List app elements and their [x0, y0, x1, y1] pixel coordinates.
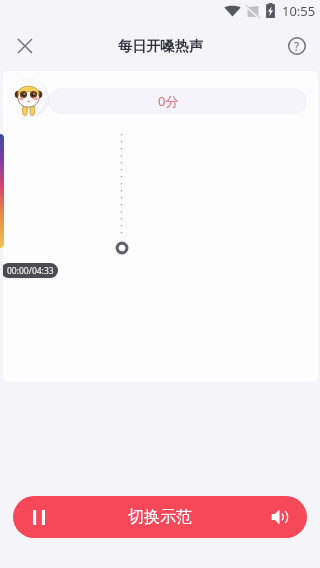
button[interactable]: 切换示范 [13, 496, 307, 538]
button[interactable]: Close [4, 25, 46, 67]
staticText: 0分 [158, 92, 179, 110]
staticText: ? [294, 38, 300, 54]
button[interactable]: Help [276, 25, 318, 67]
staticText: 每日开嗓热声 [118, 37, 204, 55]
staticText: 切换示范 [128, 507, 192, 527]
other: Volume [271, 508, 288, 526]
staticText: 00:00/04:33 [7, 265, 54, 277]
staticText: 10:55 [282, 2, 316, 20]
